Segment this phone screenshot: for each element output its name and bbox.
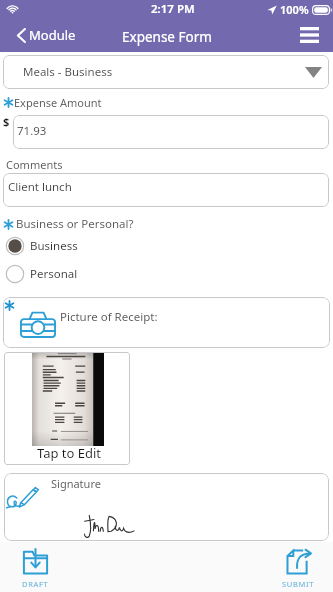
staticText: DRAFT — [22, 579, 49, 589]
staticText: 2:17 PM — [151, 1, 195, 17]
staticText: Client lunch — [8, 179, 72, 195]
staticText: 71.93 — [17, 123, 47, 139]
staticText: Business or Personal? — [16, 216, 134, 232]
button[interactable]: Picture of Receipt: — [3, 297, 330, 348]
button[interactable]: Business — [5, 235, 185, 257]
staticText: $ — [3, 114, 10, 129]
staticText: Comments — [6, 157, 63, 172]
button[interactable]: SUBMIT — [269, 542, 327, 592]
button[interactable]: Client lunch — [3, 173, 329, 207]
staticText: 100% — [280, 2, 309, 17]
button[interactable]: Personal — [5, 263, 185, 285]
staticText: Signature — [51, 476, 101, 491]
staticText: Module — [29, 26, 76, 44]
staticText: Expense Amount — [14, 95, 102, 110]
staticText: Tap to Edit — [6, 444, 130, 462]
staticText: Personal — [30, 266, 78, 282]
staticText: Meals - Business — [23, 64, 113, 80]
button[interactable]: Signature — [4, 473, 329, 541]
button[interactable]: 71.93 — [13, 115, 329, 149]
button[interactable]: DRAFT — [6, 542, 64, 592]
staticText: Picture of Receipt: — [60, 309, 158, 325]
button[interactable]: Tap to Edit — [4, 352, 130, 465]
button[interactable]: Menu — [292, 18, 326, 52]
staticText: SUBMIT — [282, 579, 315, 589]
staticText: Business — [30, 238, 78, 254]
button[interactable]: Meals - Business — [3, 55, 329, 89]
button[interactable]: Module — [17, 26, 76, 44]
staticText: Expense Form — [122, 28, 212, 46]
